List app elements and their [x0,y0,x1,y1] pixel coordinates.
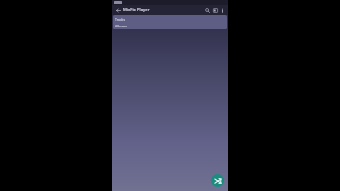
button[interactable]: Shuffle play [211,174,224,187]
staticText: Albums [115,24,128,27]
button[interactable]: Back [114,6,122,14]
button[interactable]: Albums [115,24,225,27]
button[interactable]: Cast [211,6,219,14]
button[interactable]: More options [219,7,226,14]
staticText: Tracks [115,17,126,21]
button[interactable]: Search [203,6,211,14]
staticText: MixFix Player [123,7,203,13]
button[interactable]: Tracks [115,17,225,21]
